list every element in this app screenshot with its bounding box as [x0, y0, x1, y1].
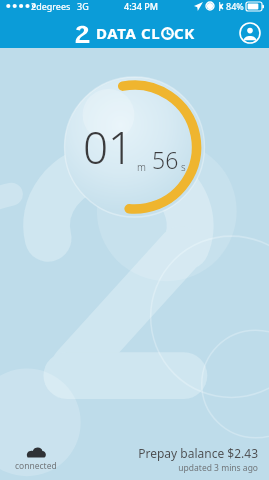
- button[interactable]: Account: [239, 22, 261, 44]
- staticText: connected: [15, 460, 57, 472]
- staticText: 3G: [77, 0, 89, 12]
- button[interactable]: connected: [9, 444, 63, 474]
- staticText: CK: [174, 23, 195, 43]
- staticText: 4:34 PM: [124, 0, 158, 12]
- staticText: Prepay balance $2.43: [138, 445, 258, 461]
- button[interactable]: Prepay balance $2.43: [136, 443, 260, 476]
- staticText: 2degrees: [31, 0, 71, 12]
- staticText: DATA CL: [96, 23, 161, 43]
- staticText: m: [137, 160, 146, 174]
- staticText: updated 3 mins ago: [178, 462, 258, 474]
- staticText: 84%: [226, 0, 244, 12]
- staticText: 56: [152, 144, 179, 175]
- staticText: s: [181, 160, 186, 174]
- staticText: 01: [83, 117, 134, 177]
